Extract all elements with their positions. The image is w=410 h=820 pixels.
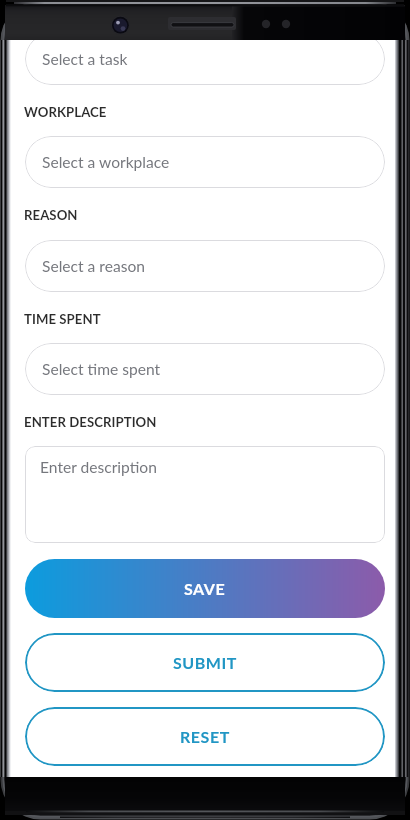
staticText: Select a task <box>42 50 128 69</box>
button[interactable]: Select a reason <box>25 240 385 292</box>
button[interactable]: Select a workplace <box>25 136 385 188</box>
staticText: RESET <box>180 727 230 746</box>
button[interactable]: RESET <box>25 707 385 766</box>
staticText: REASON <box>24 207 78 223</box>
staticText: ENTER DESCRIPTION <box>24 414 157 430</box>
staticText: WORKPLACE <box>24 104 107 120</box>
staticText: SAVE <box>184 579 226 598</box>
staticText: TIME SPENT <box>24 311 101 327</box>
staticText: Select a reason <box>42 257 145 276</box>
button[interactable]: Select time spent <box>25 343 385 395</box>
button[interactable]: Select a task <box>25 33 385 85</box>
staticText: Enter description <box>40 458 157 477</box>
button[interactable]: SAVE <box>25 559 385 618</box>
staticText: Select time spent <box>42 360 161 379</box>
staticText: SUBMIT <box>173 653 237 672</box>
button[interactable]: SUBMIT <box>25 633 385 692</box>
button[interactable]: Enter description <box>25 446 385 543</box>
staticText: Select a workplace <box>42 153 170 172</box>
